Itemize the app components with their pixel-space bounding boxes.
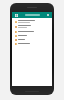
button[interactable] <box>12 24 52 29</box>
button[interactable]: Menu <box>14 13 18 17</box>
button[interactable] <box>12 41 52 45</box>
button[interactable] <box>12 37 52 41</box>
button[interactable] <box>12 29 52 33</box>
button[interactable]: Action <box>46 13 50 17</box>
button[interactable]: Title <box>25 14 40 16</box>
button[interactable] <box>12 19 52 24</box>
button[interactable] <box>12 33 52 37</box>
